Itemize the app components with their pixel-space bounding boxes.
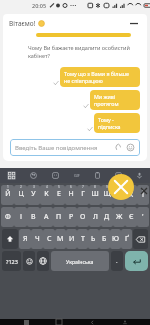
- button[interactable]: 3: [27, 185, 40, 205]
- button[interactable]: Т: [77, 229, 88, 249]
- staticText: 3: [33, 185, 35, 189]
- button[interactable]: Українська: [51, 251, 109, 271]
- button[interactable]: Recents: [18, 319, 34, 325]
- button[interactable]: Є: [125, 207, 137, 227]
- button[interactable]: Change language: [37, 251, 49, 271]
- button[interactable]: ': [137, 207, 149, 227]
- button[interactable]: Ї: [137, 185, 149, 205]
- staticText: Українська: [66, 258, 94, 265]
- staticText: Ю: [112, 234, 119, 244]
- button[interactable]: Backspace: [133, 229, 148, 249]
- button[interactable]: М: [55, 229, 66, 249]
- button[interactable]: ?123: [2, 251, 21, 271]
- staticText: У: [31, 189, 36, 199]
- button[interactable]: 8: [89, 185, 101, 205]
- button[interactable]: Л: [89, 207, 101, 227]
- button[interactable]: Ж: [113, 207, 125, 227]
- button[interactable]: Введіть Ваше повідомлення: [10, 139, 140, 156]
- button[interactable]: palette: [22, 168, 44, 183]
- button[interactable]: Тому що з Вами я більше не співпрацюю: [60, 67, 140, 87]
- button[interactable]: 5: [53, 185, 65, 205]
- staticText: С: [47, 234, 52, 244]
- button[interactable]: Тому - підписка: [94, 113, 140, 133]
- staticText: Ґ: [125, 234, 129, 244]
- staticText: 9: [106, 185, 108, 189]
- button[interactable]: Б: [99, 229, 110, 249]
- staticText: Н: [68, 189, 74, 199]
- staticText: Чому Ви бажаєте видалити особистий кабін…: [28, 44, 135, 60]
- staticText: Ї: [142, 190, 144, 200]
- button[interactable]: Ми живі протягом: [90, 90, 140, 110]
- staticText: 5: [58, 185, 60, 189]
- staticText: Ми живі протягом: [94, 93, 136, 107]
- staticText: 1: [7, 185, 9, 189]
- button[interactable]: Ф: [1, 207, 14, 227]
- staticText: 4: [46, 185, 48, 189]
- staticText: Е: [57, 189, 61, 199]
- staticText: 6: [70, 185, 72, 189]
- button[interactable]: .: [111, 251, 123, 271]
- button[interactable]: Minimize: [127, 17, 141, 29]
- button[interactable]: Emoji: [23, 251, 35, 271]
- button[interactable]: 0: [113, 185, 125, 205]
- button[interactable]: Shift: [2, 229, 18, 249]
- button[interactable]: Ю: [110, 229, 121, 249]
- staticText: Г: [81, 189, 85, 199]
- button[interactable]: И: [66, 229, 77, 249]
- staticText: Вітаємо!: [9, 19, 36, 28]
- button[interactable]: Attach file: [114, 143, 123, 152]
- button[interactable]: 2: [14, 185, 27, 205]
- staticText: Л: [93, 212, 98, 222]
- staticText: О: [80, 212, 86, 222]
- button[interactable]: Keyboard layout: [117, 319, 133, 325]
- button[interactable]: В: [27, 207, 40, 227]
- button[interactable]: Home: [51, 319, 67, 325]
- staticText: Щ: [103, 189, 111, 199]
- staticText: И: [69, 234, 75, 244]
- button[interactable]: 1: [1, 185, 14, 205]
- staticText: Т: [81, 234, 85, 244]
- button[interactable]: clip: [87, 168, 108, 183]
- button[interactable]: settings: [108, 168, 129, 183]
- button[interactable]: С: [43, 229, 55, 249]
- staticText: Ц: [18, 189, 24, 199]
- button[interactable]: 4: [40, 185, 53, 205]
- button[interactable]: П: [53, 207, 65, 227]
- staticText: А: [44, 212, 49, 222]
- button[interactable]: Х: [125, 185, 137, 205]
- button[interactable]: Д: [101, 207, 113, 227]
- staticText: Д: [104, 212, 110, 222]
- staticText: 2: [20, 185, 22, 189]
- staticText: Б: [102, 234, 107, 244]
- button[interactable]: Я: [19, 229, 31, 249]
- staticText: Ь: [91, 234, 96, 244]
- staticText: В: [31, 212, 36, 222]
- button[interactable]: Ь: [88, 229, 99, 249]
- button[interactable]: Back: [84, 319, 100, 325]
- button[interactable]: 6: [65, 185, 77, 205]
- staticText: Й: [5, 189, 11, 199]
- button[interactable]: Ґ: [121, 229, 132, 249]
- staticText: Я: [23, 234, 28, 244]
- staticText: .: [116, 257, 118, 265]
- staticText: ?123: [6, 258, 18, 265]
- button[interactable]: 7: [77, 185, 89, 205]
- button[interactable]: О: [77, 207, 89, 227]
- button[interactable]: 9: [101, 185, 113, 205]
- staticText: 7: [82, 185, 84, 189]
- button[interactable]: А: [40, 207, 53, 227]
- button[interactable]: Enter: [125, 251, 148, 271]
- button[interactable]: Ч: [31, 229, 43, 249]
- button[interactable]: Emoji: [126, 143, 135, 152]
- button[interactable]: Р: [65, 207, 77, 227]
- staticText: П: [56, 212, 62, 222]
- button[interactable]: grid: [0, 168, 22, 183]
- staticText: Введіть Ваше повідомлення: [15, 144, 98, 152]
- staticText: GIF: [74, 173, 80, 178]
- button[interactable]: sticker: [44, 168, 66, 183]
- button[interactable]: gif: [66, 168, 87, 183]
- button[interactable]: І: [14, 207, 27, 227]
- button[interactable]: Close chat: [108, 174, 134, 200]
- staticText: Ф: [5, 212, 11, 222]
- button[interactable]: mic: [129, 168, 150, 183]
